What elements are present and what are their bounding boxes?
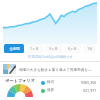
staticText: 6ヶ月 bbox=[68, 46, 77, 51]
staticText: 債券 bbox=[47, 88, 55, 93]
staticText: ¥21,971 bbox=[83, 88, 97, 93]
button[interactable]: ポートフォリオ bbox=[0, 78, 100, 100]
staticText: 3ヶ月 bbox=[49, 46, 58, 51]
staticText: 1ヶ月 bbox=[30, 46, 39, 51]
staticText: 株式 bbox=[47, 80, 55, 85]
button[interactable]: 相場の大きな動きも乗り越えて長期投資を― bbox=[0, 62, 100, 76]
staticText: 相場の大きな動きも乗り越えて長期投資を― bbox=[19, 67, 97, 72]
staticText: 1年 bbox=[87, 46, 93, 51]
button[interactable]: 3ヶ月 bbox=[45, 44, 62, 53]
button[interactable]: 1ヶ月 bbox=[26, 44, 43, 53]
button[interactable]: 6ヶ月 bbox=[64, 44, 81, 53]
button[interactable]: 全期間 bbox=[4, 44, 24, 53]
button[interactable]: 1年 bbox=[83, 44, 96, 53]
staticText: 全期間 bbox=[9, 47, 20, 51]
staticText: ポートフォリオ bbox=[5, 78, 35, 83]
staticText: ※ 2022年1月時点の評価額です bbox=[28, 55, 73, 59]
staticText: ¥365,356 bbox=[81, 80, 97, 85]
